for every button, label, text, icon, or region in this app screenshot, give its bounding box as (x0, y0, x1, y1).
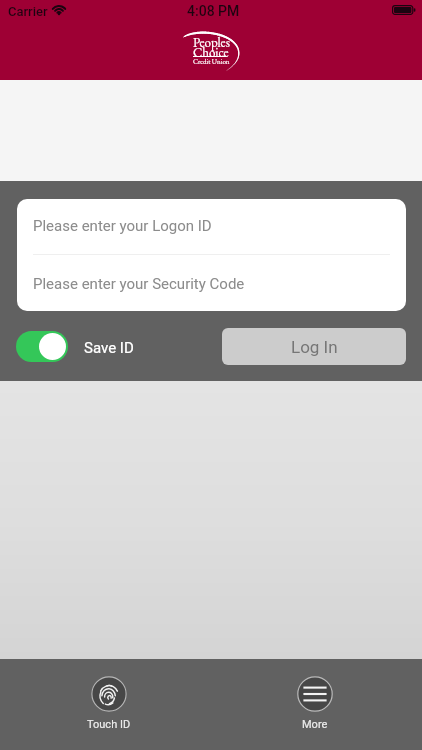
staticText: Carrier (8, 4, 48, 19)
staticText: Choice (193, 44, 229, 61)
staticText: Credit Union (193, 57, 230, 66)
staticText: Save ID (84, 339, 134, 357)
staticText: Please enter your Security Code (33, 275, 245, 293)
button[interactable]: Log In (222, 328, 406, 365)
staticText: Peoples (193, 34, 230, 51)
button[interactable]: Please enter your Security Code (17, 255, 406, 311)
button[interactable]: Save ID, on (16, 331, 134, 362)
staticText: More (302, 718, 328, 731)
staticText: Touch ID (87, 718, 131, 731)
other: Touch ID (91, 676, 127, 712)
staticText: Please enter your Logon ID (33, 217, 212, 235)
button[interactable]: Touch ID (73, 668, 144, 731)
staticText: Log In (291, 337, 338, 357)
button[interactable]: More (279, 668, 350, 731)
button[interactable]: Please enter your Logon ID (17, 199, 406, 255)
other: More (297, 676, 333, 712)
staticText: 4:08 PM (187, 3, 240, 19)
